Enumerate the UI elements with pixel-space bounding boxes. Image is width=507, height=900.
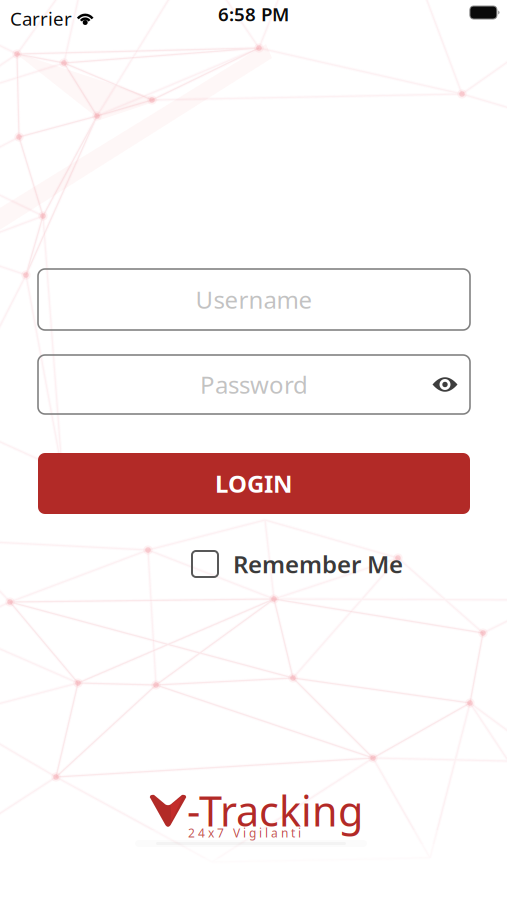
button[interactable]: Show password <box>423 362 467 406</box>
staticText: LOGIN <box>215 468 293 499</box>
button[interactable]: LOGIN <box>38 453 470 514</box>
staticText: Carrier <box>10 6 72 31</box>
staticText: 6:58 PM <box>218 2 289 26</box>
staticText: Remember Me <box>233 548 403 580</box>
button[interactable]: Remember Me <box>192 548 403 580</box>
staticText: Password <box>200 369 308 400</box>
staticText: Username <box>195 284 312 315</box>
staticText: -Tracking <box>187 783 363 838</box>
staticText: 2 4 x 7 V i g i l a n t i <box>188 825 301 841</box>
